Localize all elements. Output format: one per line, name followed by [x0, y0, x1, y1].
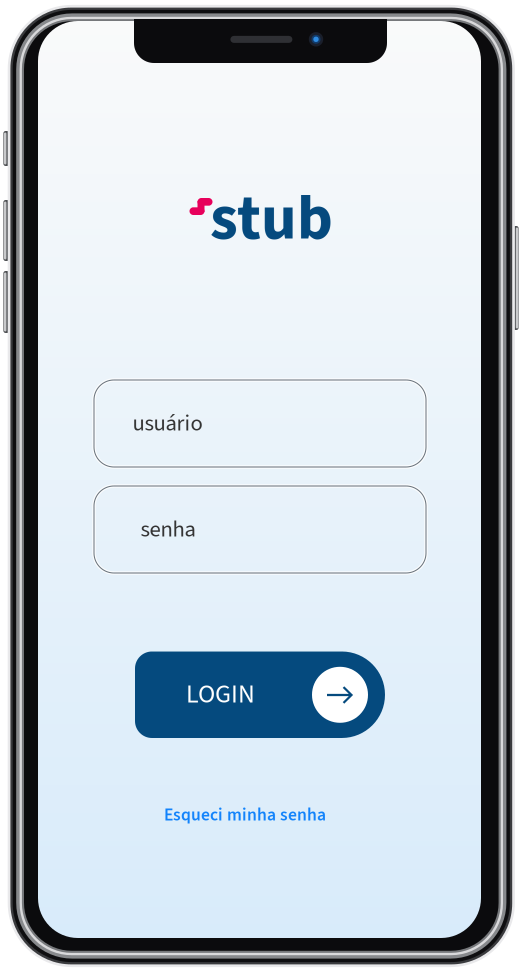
button[interactable]: senha — [94, 486, 426, 573]
staticText: Esqueci minha senha — [164, 802, 326, 828]
button[interactable]: LOGIN — [135, 651, 385, 738]
button[interactable]: usuário — [94, 380, 426, 467]
staticText: senha — [140, 513, 195, 546]
button[interactable]: Esqueci minha senha — [145, 801, 345, 829]
staticText: LOGIN — [186, 676, 255, 713]
staticText: usuário — [132, 407, 202, 440]
staticText: stub — [210, 174, 333, 264]
